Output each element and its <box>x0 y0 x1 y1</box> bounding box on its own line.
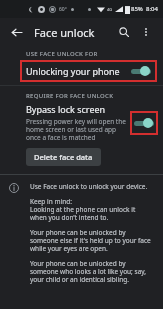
staticText: 60° <box>59 6 67 13</box>
staticText: Delete face data <box>34 152 93 162</box>
staticText: Your phone can be unlocked by someone wh… <box>30 259 153 284</box>
button[interactable]: Delete face data <box>26 148 101 166</box>
button[interactable]: Unlocking your phone <box>20 60 157 82</box>
staticText: 8:04 <box>146 5 158 13</box>
button[interactable]: More options <box>137 23 155 41</box>
button[interactable]: Back <box>8 24 24 40</box>
staticText: REQUIRE FOR FACE UNLOCK <box>26 92 114 100</box>
staticText: Use Face unlock to unlock your device. <box>30 182 148 191</box>
button[interactable]: Search <box>115 23 133 41</box>
button[interactable]: Bypass lock screen <box>0 103 163 142</box>
staticText: Face unlock <box>34 25 95 40</box>
staticText: Keep in mind: Looking at the phone can u… <box>30 197 153 222</box>
staticText: Unlocking your phone <box>26 65 120 77</box>
staticText: 85% <box>131 5 143 13</box>
staticText: 4G <box>107 7 113 12</box>
staticText: Pressing power key will open the home sc… <box>26 117 126 142</box>
staticText: USE FACE UNLOCK FOR <box>26 50 98 58</box>
staticText: Your phone can be unlocked by someone el… <box>30 228 153 253</box>
staticText: Bypass lock screen <box>26 103 106 115</box>
